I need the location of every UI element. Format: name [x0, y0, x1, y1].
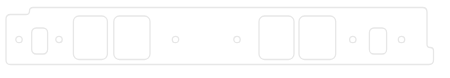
button[interactable]: Panel — [0, 0, 450, 78]
